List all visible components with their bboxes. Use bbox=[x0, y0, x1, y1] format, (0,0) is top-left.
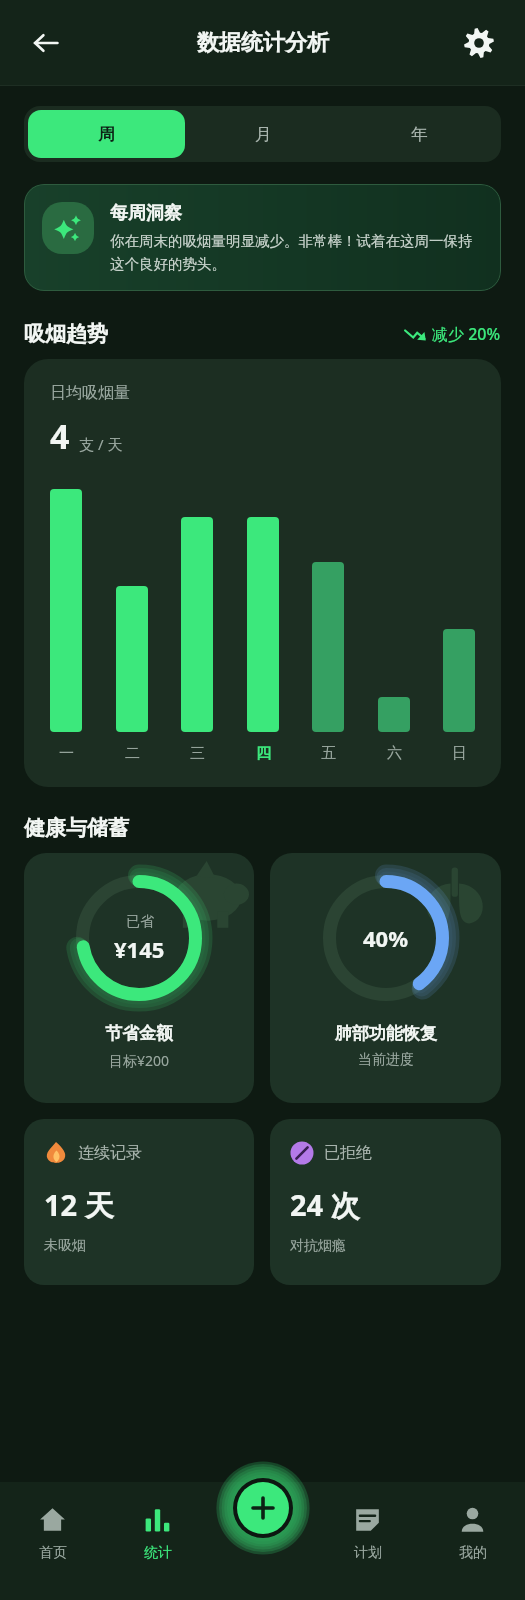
staticText: 我的 bbox=[459, 1544, 487, 1562]
staticText: 4 bbox=[50, 413, 70, 459]
staticText: 日 bbox=[452, 744, 467, 763]
staticText: 周 bbox=[98, 124, 115, 145]
staticText: 五 bbox=[321, 744, 336, 763]
staticText: 四 bbox=[256, 744, 271, 763]
staticText: 健康与储蓄 bbox=[24, 815, 129, 841]
button[interactable]: 周 bbox=[28, 110, 185, 158]
button[interactable]: 日均吸烟量 bbox=[24, 359, 501, 787]
staticText: 统计 bbox=[144, 1544, 172, 1562]
button[interactable]: 已拒绝 bbox=[270, 1119, 501, 1285]
staticText: 首页 bbox=[39, 1544, 67, 1562]
staticText: 日均吸烟量 bbox=[50, 383, 130, 403]
staticText: 支 / 天 bbox=[79, 434, 123, 454]
button[interactable]: 计划 bbox=[315, 1482, 420, 1600]
staticText: 每周洞察 bbox=[110, 202, 182, 225]
staticText: 六 bbox=[387, 744, 402, 763]
staticText: 肺部功能恢复 bbox=[335, 1023, 437, 1044]
staticText: 吸烟趋势 bbox=[24, 321, 108, 347]
button[interactable]: 统计 bbox=[105, 1482, 210, 1600]
staticText: 40% bbox=[363, 923, 409, 953]
staticText: 二 bbox=[125, 744, 140, 763]
button[interactable]: 连续记录 bbox=[24, 1119, 254, 1285]
staticText: 已省 bbox=[126, 913, 154, 931]
staticText: 月 bbox=[255, 124, 272, 145]
staticText: 对抗烟瘾 bbox=[290, 1237, 346, 1255]
button[interactable]: 年 bbox=[341, 110, 497, 158]
button[interactable]: 已省 bbox=[24, 853, 254, 1103]
button[interactable]: 40% bbox=[270, 853, 501, 1103]
staticText: 24 次 bbox=[290, 1185, 360, 1225]
button[interactable]: 我的 bbox=[420, 1482, 525, 1600]
staticText: 三 bbox=[190, 744, 205, 763]
button[interactable]: 添加记录 bbox=[223, 1468, 303, 1548]
staticText: ¥145 bbox=[114, 934, 165, 964]
staticText: 12 天 bbox=[44, 1185, 114, 1225]
staticText: 数据统计分析 bbox=[197, 29, 329, 57]
staticText: 节省金额 bbox=[105, 1023, 173, 1044]
button[interactable]: 设置 bbox=[455, 19, 503, 67]
staticText: 目标¥200 bbox=[109, 1051, 170, 1070]
staticText: 一 bbox=[59, 744, 74, 763]
staticText: 计划 bbox=[354, 1544, 382, 1562]
staticText: 减少 20% bbox=[432, 323, 501, 345]
staticText: 已拒绝 bbox=[324, 1143, 372, 1163]
button[interactable]: 月 bbox=[185, 110, 341, 158]
staticText: 年 bbox=[411, 124, 428, 145]
staticText: 连续记录 bbox=[78, 1143, 142, 1163]
button[interactable]: 返回 bbox=[22, 19, 70, 67]
staticText: 你在周末的吸烟量明显减少。非常棒！试着在这周一保持这个良好的势头。 bbox=[110, 232, 483, 273]
button[interactable]: 首页 bbox=[0, 1482, 105, 1600]
staticText: 当前进度 bbox=[358, 1051, 414, 1069]
staticText: 未吸烟 bbox=[44, 1237, 86, 1255]
button[interactable]: 每周洞察 bbox=[24, 184, 501, 291]
